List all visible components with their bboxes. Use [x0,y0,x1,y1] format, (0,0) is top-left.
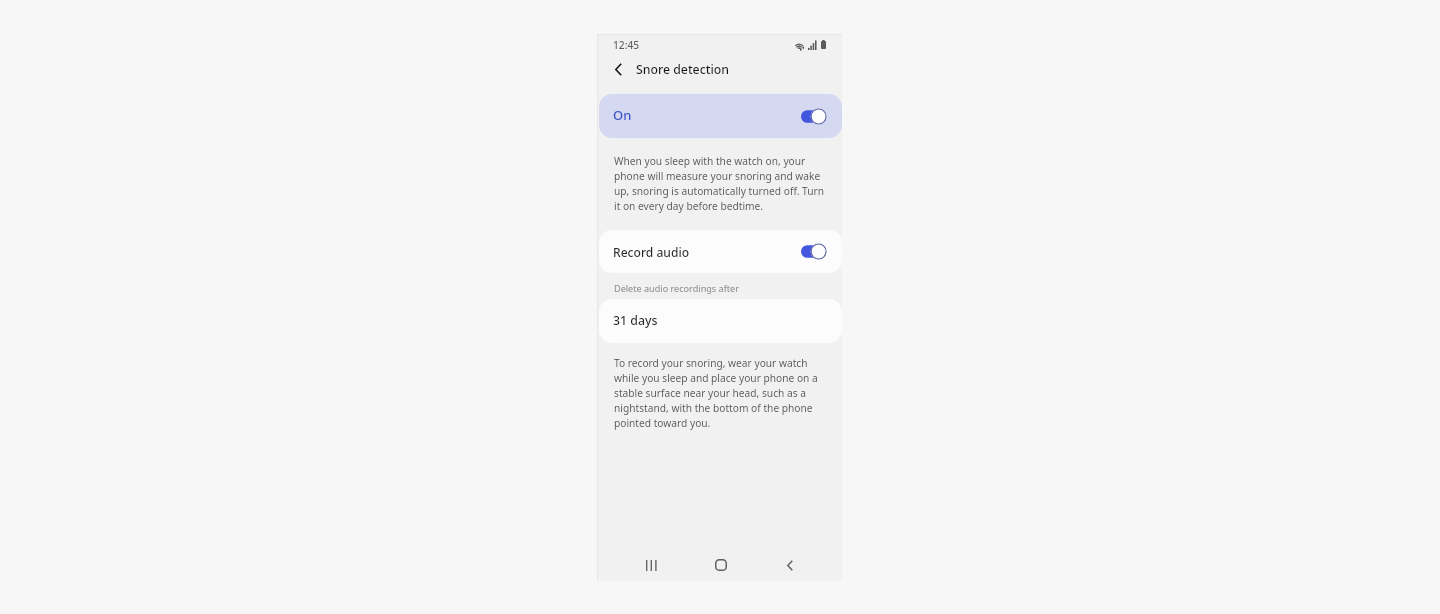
button[interactable]: Record audio [599,230,842,273]
button[interactable]: Home [701,546,741,584]
button[interactable]: Snore detection on [793,103,835,130]
staticText: On [613,106,632,124]
button[interactable]: Back [770,546,810,584]
button[interactable]: Recent apps [631,546,671,584]
staticText: Record audio [613,244,690,260]
staticText: Delete audio recordings after [614,282,739,294]
staticText: Snore detection [636,61,729,78]
staticText: When you sleep with the watch on, your p… [614,154,830,213]
button[interactable]: Record audio on [793,238,835,265]
button[interactable]: 31 days [599,299,842,343]
staticText: 12:45 [613,38,640,52]
staticText: 31 days [613,312,658,329]
button[interactable]: Navigate up [604,53,634,85]
staticText: To record your snoring, wear your watch … [614,356,830,430]
button[interactable]: On [599,94,842,138]
